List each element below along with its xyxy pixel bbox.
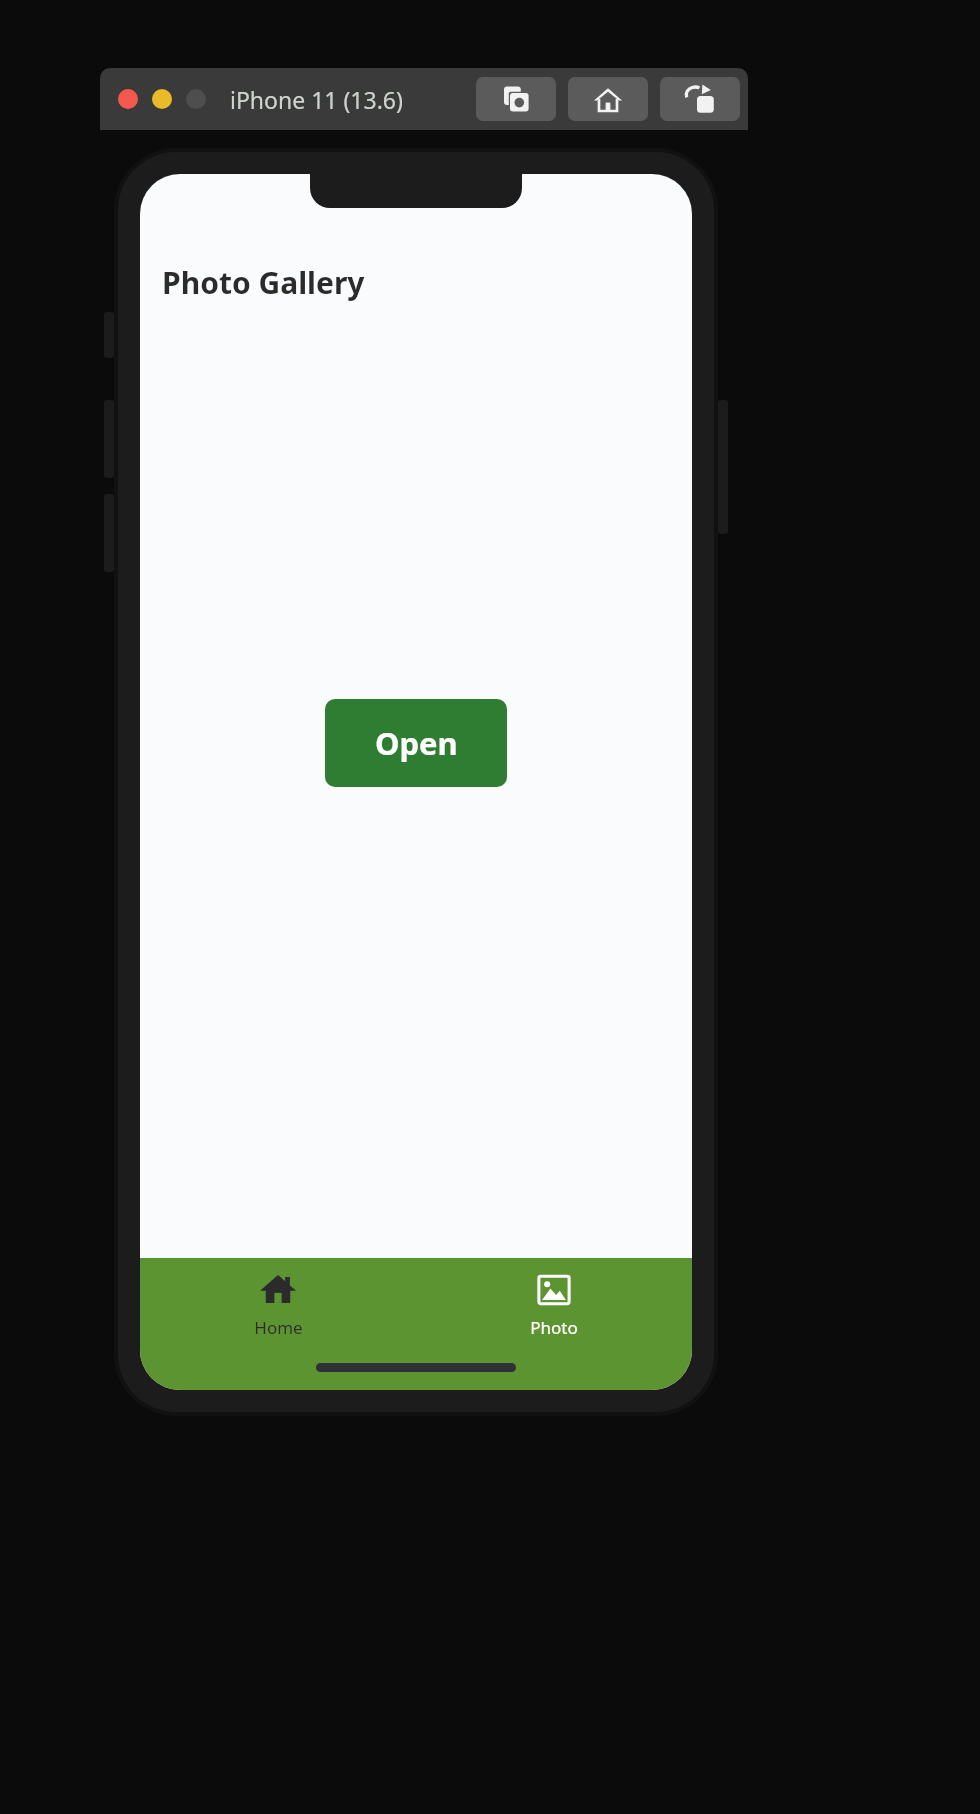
button[interactable]: Minimize	[152, 89, 172, 109]
button[interactable]: Rotate	[660, 77, 740, 121]
button[interactable]: Open	[325, 699, 507, 787]
button[interactable]: Screenshot	[476, 77, 556, 121]
button[interactable]: Home	[568, 77, 648, 121]
staticText: iPhone 11 (13.6)	[230, 84, 403, 115]
staticText: Open	[375, 722, 458, 764]
staticText: Photo Gallery	[162, 262, 365, 303]
staticText: Home	[254, 1316, 303, 1339]
button[interactable]: Close	[118, 89, 138, 109]
staticText: Photo	[530, 1316, 578, 1339]
button[interactable]: Home	[140, 1258, 416, 1390]
button[interactable]: Photo	[416, 1258, 692, 1390]
button[interactable]: Zoom	[186, 89, 206, 109]
